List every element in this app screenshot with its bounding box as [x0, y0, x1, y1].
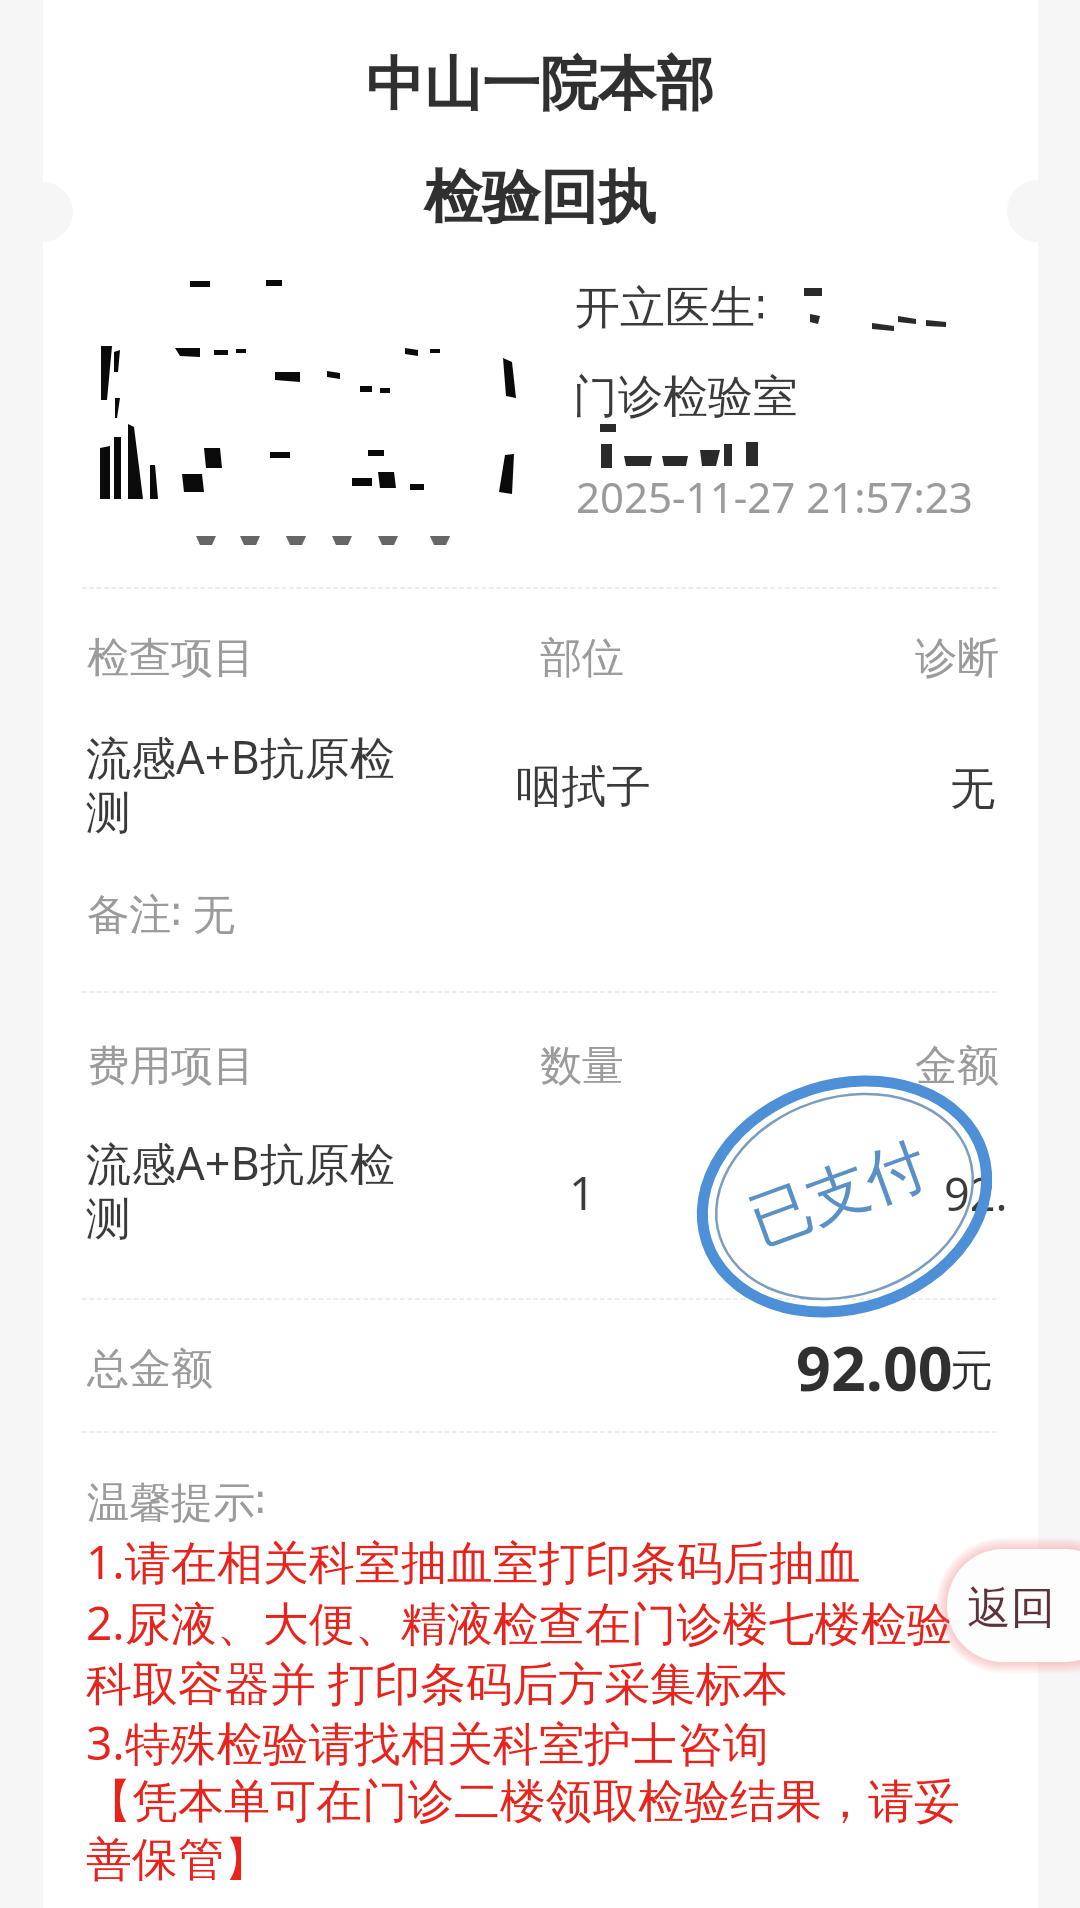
- staticText: 1.请在相关科室抽血室打印条码后抽血 2.尿液、大便、精液检查在门诊楼七楼检验 …: [86, 1530, 960, 1889]
- staticText: 92.00: [796, 1326, 953, 1409]
- staticText: 已支付: [739, 1126, 938, 1261]
- staticText: 流感A+B抗原检测: [86, 726, 431, 842]
- staticText: 费用项目: [87, 1040, 255, 1093]
- button[interactable]: 返回: [947, 1549, 1080, 1662]
- staticText: 部位: [540, 632, 624, 685]
- staticText: 数量: [540, 1040, 624, 1093]
- staticText: 1: [569, 1161, 596, 1224]
- staticText: 2025-11-27 21:57:23: [576, 468, 973, 525]
- staticText: 检验回执: [0, 161, 1080, 234]
- staticText: 92.: [944, 1163, 1008, 1224]
- staticText: 元: [950, 1344, 993, 1398]
- staticText: 金额: [915, 1040, 999, 1093]
- staticText: 咽拭子: [516, 759, 651, 816]
- staticText: 温馨提示∶: [87, 1477, 266, 1530]
- staticText: 开立医生∶: [575, 280, 767, 337]
- staticText: 无: [950, 761, 995, 818]
- staticText: 返回: [967, 1581, 1055, 1636]
- staticText: 备注∶ 无: [87, 884, 235, 941]
- staticText: 诊断: [915, 632, 999, 685]
- staticText: 检查项目: [87, 632, 255, 685]
- staticText: 门诊检验室: [573, 369, 798, 426]
- staticText: 流感A+B抗原检测: [86, 1132, 431, 1248]
- staticText: 总金额: [87, 1343, 213, 1396]
- staticText: 中山一院本部: [0, 48, 1080, 121]
